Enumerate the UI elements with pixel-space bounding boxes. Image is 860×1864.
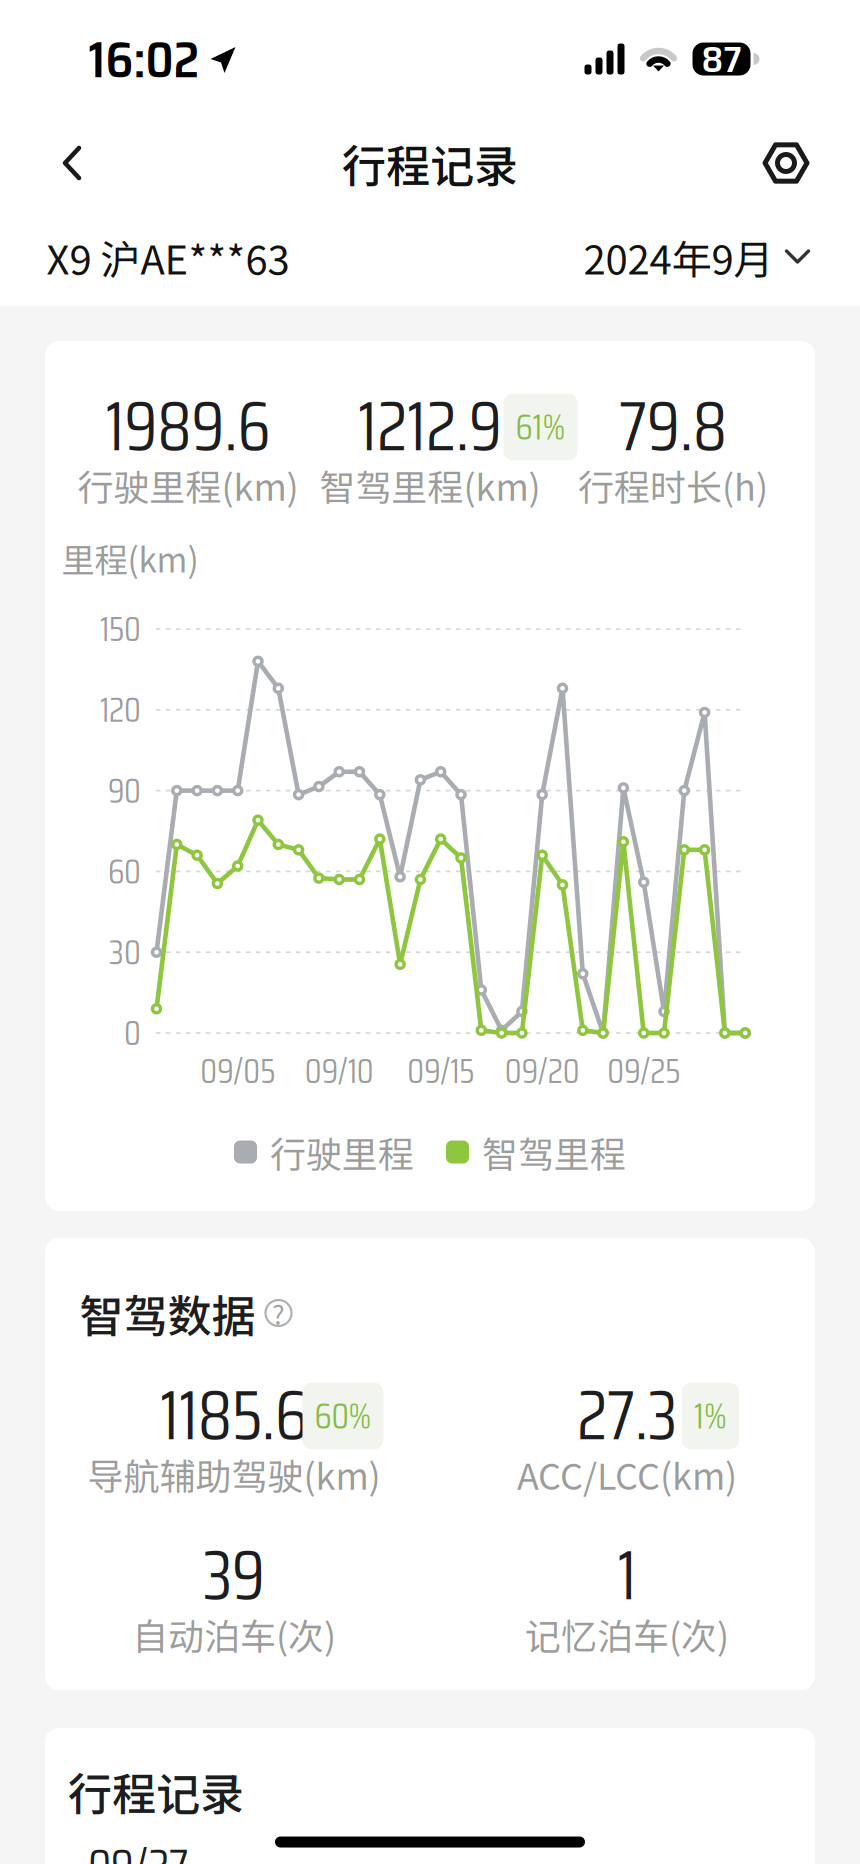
- staticText: 智驾里程: [482, 1126, 626, 1178]
- staticText: 自动泊车(次): [132, 1608, 336, 1660]
- staticText: 行程记录: [342, 131, 518, 195]
- staticText: 61%: [515, 399, 565, 455]
- staticText: 1989.6: [105, 371, 270, 480]
- button[interactable]: 2024年9月: [577, 220, 816, 294]
- button[interactable]: Settings: [751, 128, 821, 198]
- staticText: 90: [108, 763, 141, 818]
- staticText: 记忆泊车(次): [525, 1608, 729, 1660]
- staticText: 09/27: [88, 1828, 188, 1864]
- staticText: 行驶里程: [270, 1126, 414, 1178]
- staticText: 09/05: [200, 1044, 275, 1098]
- staticText: 60: [108, 844, 141, 899]
- staticText: ?: [272, 1294, 285, 1332]
- staticText: 120: [100, 682, 141, 737]
- staticText: 87: [701, 30, 741, 88]
- staticText: 行驶里程(km): [77, 459, 298, 511]
- staticText: 09/20: [505, 1044, 580, 1098]
- staticText: 16:02: [88, 21, 199, 99]
- staticText: 09/10: [305, 1044, 374, 1098]
- staticText: 150: [100, 602, 141, 656]
- staticText: 30: [109, 925, 141, 979]
- staticText: X9 沪AE***63: [46, 228, 289, 286]
- staticText: 0: [124, 1006, 141, 1060]
- staticText: 79.8: [619, 371, 727, 480]
- staticText: 里程(km): [61, 534, 198, 582]
- staticText: 导航辅助驾驶(km): [87, 1448, 380, 1500]
- staticText: 行程时长(h): [578, 459, 768, 511]
- staticText: 09/25: [607, 1044, 680, 1098]
- staticText: 39: [203, 1520, 265, 1629]
- staticText: 09/15: [407, 1044, 474, 1098]
- staticText: ACC/LCC(km): [517, 1448, 737, 1500]
- staticText: 智驾里程(km): [319, 459, 540, 511]
- staticText: 1212.9: [358, 371, 502, 480]
- staticText: 27.3: [577, 1360, 677, 1469]
- staticText: 行程记录: [68, 1759, 244, 1823]
- staticText: 智驾数据: [79, 1281, 255, 1345]
- staticText: 1185.6: [160, 1360, 308, 1469]
- staticText: 1: [617, 1520, 636, 1629]
- staticText: 60%: [314, 1388, 371, 1444]
- staticText: 1%: [694, 1388, 727, 1444]
- staticText: 2024年9月: [583, 228, 773, 286]
- button[interactable]: Back: [34, 125, 110, 201]
